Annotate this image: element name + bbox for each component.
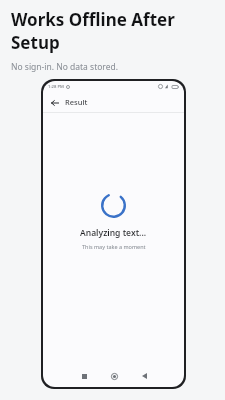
staticText: 1:28 PM	[48, 84, 64, 90]
staticText: This may take a moment	[82, 243, 146, 250]
button[interactable]: Back	[129, 367, 159, 385]
staticText: No sign-in. No data stored.	[11, 61, 119, 73]
staticText: Works Offline After	[11, 8, 175, 31]
button[interactable]: Back	[48, 96, 61, 109]
button[interactable]: Home	[99, 367, 129, 385]
staticText: Setup	[11, 31, 60, 54]
staticText: Result	[65, 97, 88, 107]
staticText: Analyzing text...	[80, 227, 147, 239]
button[interactable]: Recent apps	[69, 367, 99, 385]
